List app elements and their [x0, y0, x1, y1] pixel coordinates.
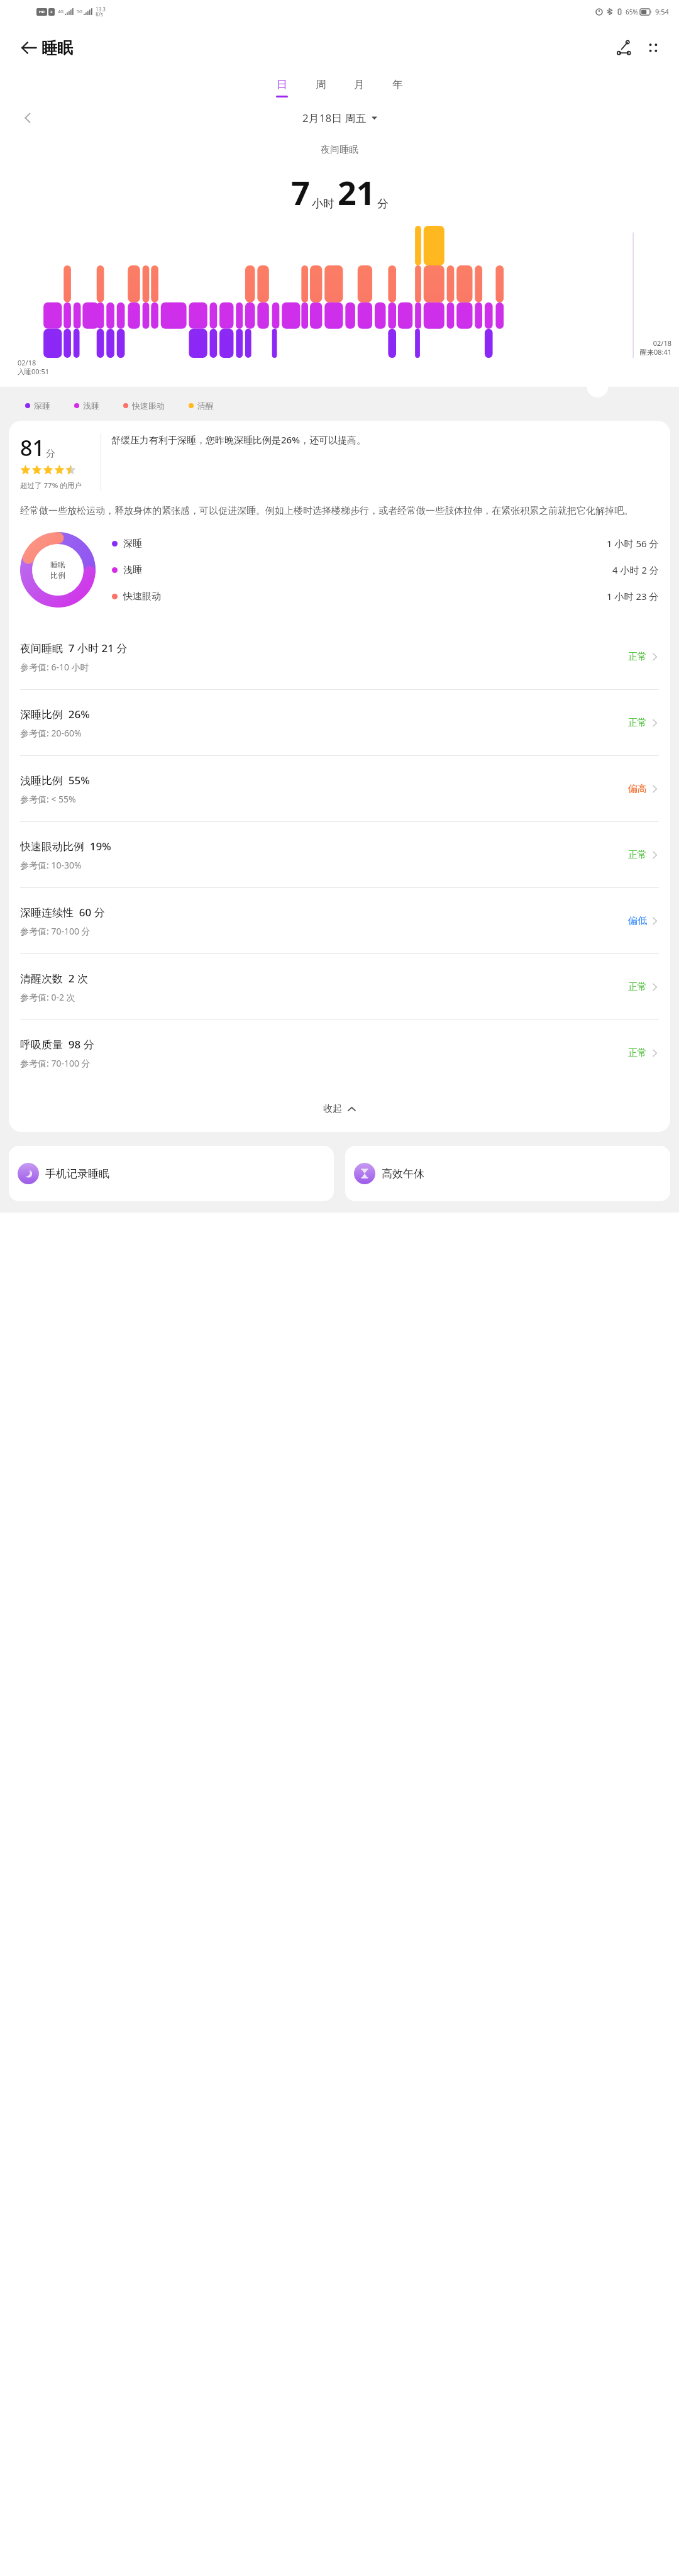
- staticText: 深睡比例 26%: [20, 707, 90, 721]
- button[interactable]: 日: [276, 78, 288, 97]
- staticText: 手机记录睡眠: [45, 1167, 109, 1180]
- staticText: 舒缓压力有利于深睡，您昨晚深睡比例是26%，还可以提高。: [111, 433, 366, 446]
- staticText: 周: [316, 78, 326, 91]
- button[interactable]: Share: [610, 33, 639, 62]
- staticText: 快速眼动: [123, 591, 161, 602]
- button[interactable]: Back: [14, 33, 44, 63]
- button[interactable]: 高效午休: [345, 1146, 670, 1201]
- staticText: 经常做一些放松运动，释放身体的紧张感，可以促进深睡。例如上楼时选择楼梯步行，或者…: [20, 505, 633, 517]
- staticText: 1 小时 23 分: [607, 590, 659, 602]
- button[interactable]: 夜间睡眠 7 小时 21 分: [20, 624, 659, 689]
- button[interactable]: 深睡连续性 60 分: [20, 888, 659, 953]
- staticText: 21: [338, 170, 375, 214]
- staticText: 参考值: 70-100 分: [20, 1057, 91, 1069]
- button[interactable]: 浅睡比例 55%: [20, 756, 659, 821]
- staticText: 4 小时 2 分: [612, 563, 659, 576]
- staticText: 参考值: 10-30%: [20, 859, 82, 871]
- button[interactable]: 手机记录睡眠: [9, 1146, 334, 1201]
- staticText: 呼吸质量 98 分: [20, 1037, 94, 1052]
- staticText: 深睡连续性 60 分: [20, 905, 105, 919]
- staticText: 2: [50, 9, 53, 14]
- button[interactable]: 清醒次数 2 次: [20, 954, 659, 1019]
- staticText: 2月18日 周五: [302, 111, 367, 125]
- staticText: 快速眼动比例 19%: [20, 839, 111, 853]
- staticText: 1 小时 56 分: [607, 537, 659, 550]
- staticText: 清醒: [197, 401, 214, 411]
- staticText: 参考值: 20-60%: [20, 727, 82, 739]
- staticText: 月: [354, 78, 365, 91]
- button[interactable]: 周: [316, 78, 326, 97]
- staticText: 分: [46, 448, 55, 460]
- staticText: 7: [291, 170, 310, 214]
- staticText: 正常: [628, 981, 647, 993]
- staticText: 参考值: < 55%: [20, 793, 76, 805]
- staticText: 高效午休: [382, 1167, 424, 1180]
- staticText: 睡眠 比例: [50, 560, 65, 580]
- staticText: 9:54: [655, 7, 669, 16]
- button[interactable]: Previous day: [14, 104, 41, 131]
- staticText: 02/18 醒来08:41: [639, 338, 671, 357]
- staticText: 正常: [628, 651, 647, 663]
- staticText: 偏低: [628, 915, 647, 927]
- staticText: 浅睡: [123, 564, 142, 576]
- button[interactable]: 月: [354, 78, 365, 97]
- button[interactable]: 呼吸质量 98 分: [20, 1020, 659, 1085]
- staticText: 浅睡比例 55%: [20, 773, 90, 787]
- staticText: 小时: [312, 197, 334, 211]
- button[interactable]: 年: [392, 78, 403, 97]
- staticText: 超过了 77% 的用户: [20, 480, 82, 491]
- button[interactable]: More options: [639, 33, 668, 62]
- staticText: 日: [277, 78, 287, 91]
- staticText: 快速眼动: [132, 401, 165, 411]
- staticText: 65%: [626, 8, 638, 16]
- staticText: 正常: [628, 849, 647, 861]
- staticText: 深睡: [34, 401, 50, 411]
- staticText: 4G: [58, 9, 64, 15]
- staticText: 分: [377, 197, 389, 211]
- staticText: 夜间睡眠 7 小时 21 分: [20, 641, 128, 655]
- staticText: 收起: [323, 1103, 342, 1115]
- staticText: 正常: [628, 717, 647, 729]
- staticText: 02/18 入睡00:51: [18, 358, 50, 376]
- staticText: 81: [20, 433, 45, 462]
- staticText: 13.3 K/s: [96, 6, 106, 18]
- button[interactable]: 快速眼动比例 19%: [20, 822, 659, 887]
- staticText: 睡眠: [41, 38, 73, 58]
- staticText: 浅睡: [83, 401, 99, 411]
- staticText: 清醒次数 2 次: [20, 971, 88, 985]
- staticText: 5G: [77, 9, 83, 15]
- staticText: 年: [392, 78, 403, 91]
- staticText: HD: [39, 9, 45, 14]
- staticText: 偏高: [628, 783, 647, 795]
- button[interactable]: 深睡比例 26%: [20, 690, 659, 755]
- staticText: 正常: [628, 1047, 647, 1059]
- button[interactable]: 收起: [20, 1085, 659, 1132]
- staticText: 深睡: [123, 538, 142, 550]
- staticText: 参考值: 0-2 次: [20, 991, 75, 1003]
- staticText: 参考值: 6-10 小时: [20, 661, 89, 673]
- staticText: 夜间睡眠: [0, 144, 679, 156]
- button[interactable]: 2月18日 周五: [302, 111, 377, 125]
- staticText: 参考值: 70-100 分: [20, 925, 91, 937]
